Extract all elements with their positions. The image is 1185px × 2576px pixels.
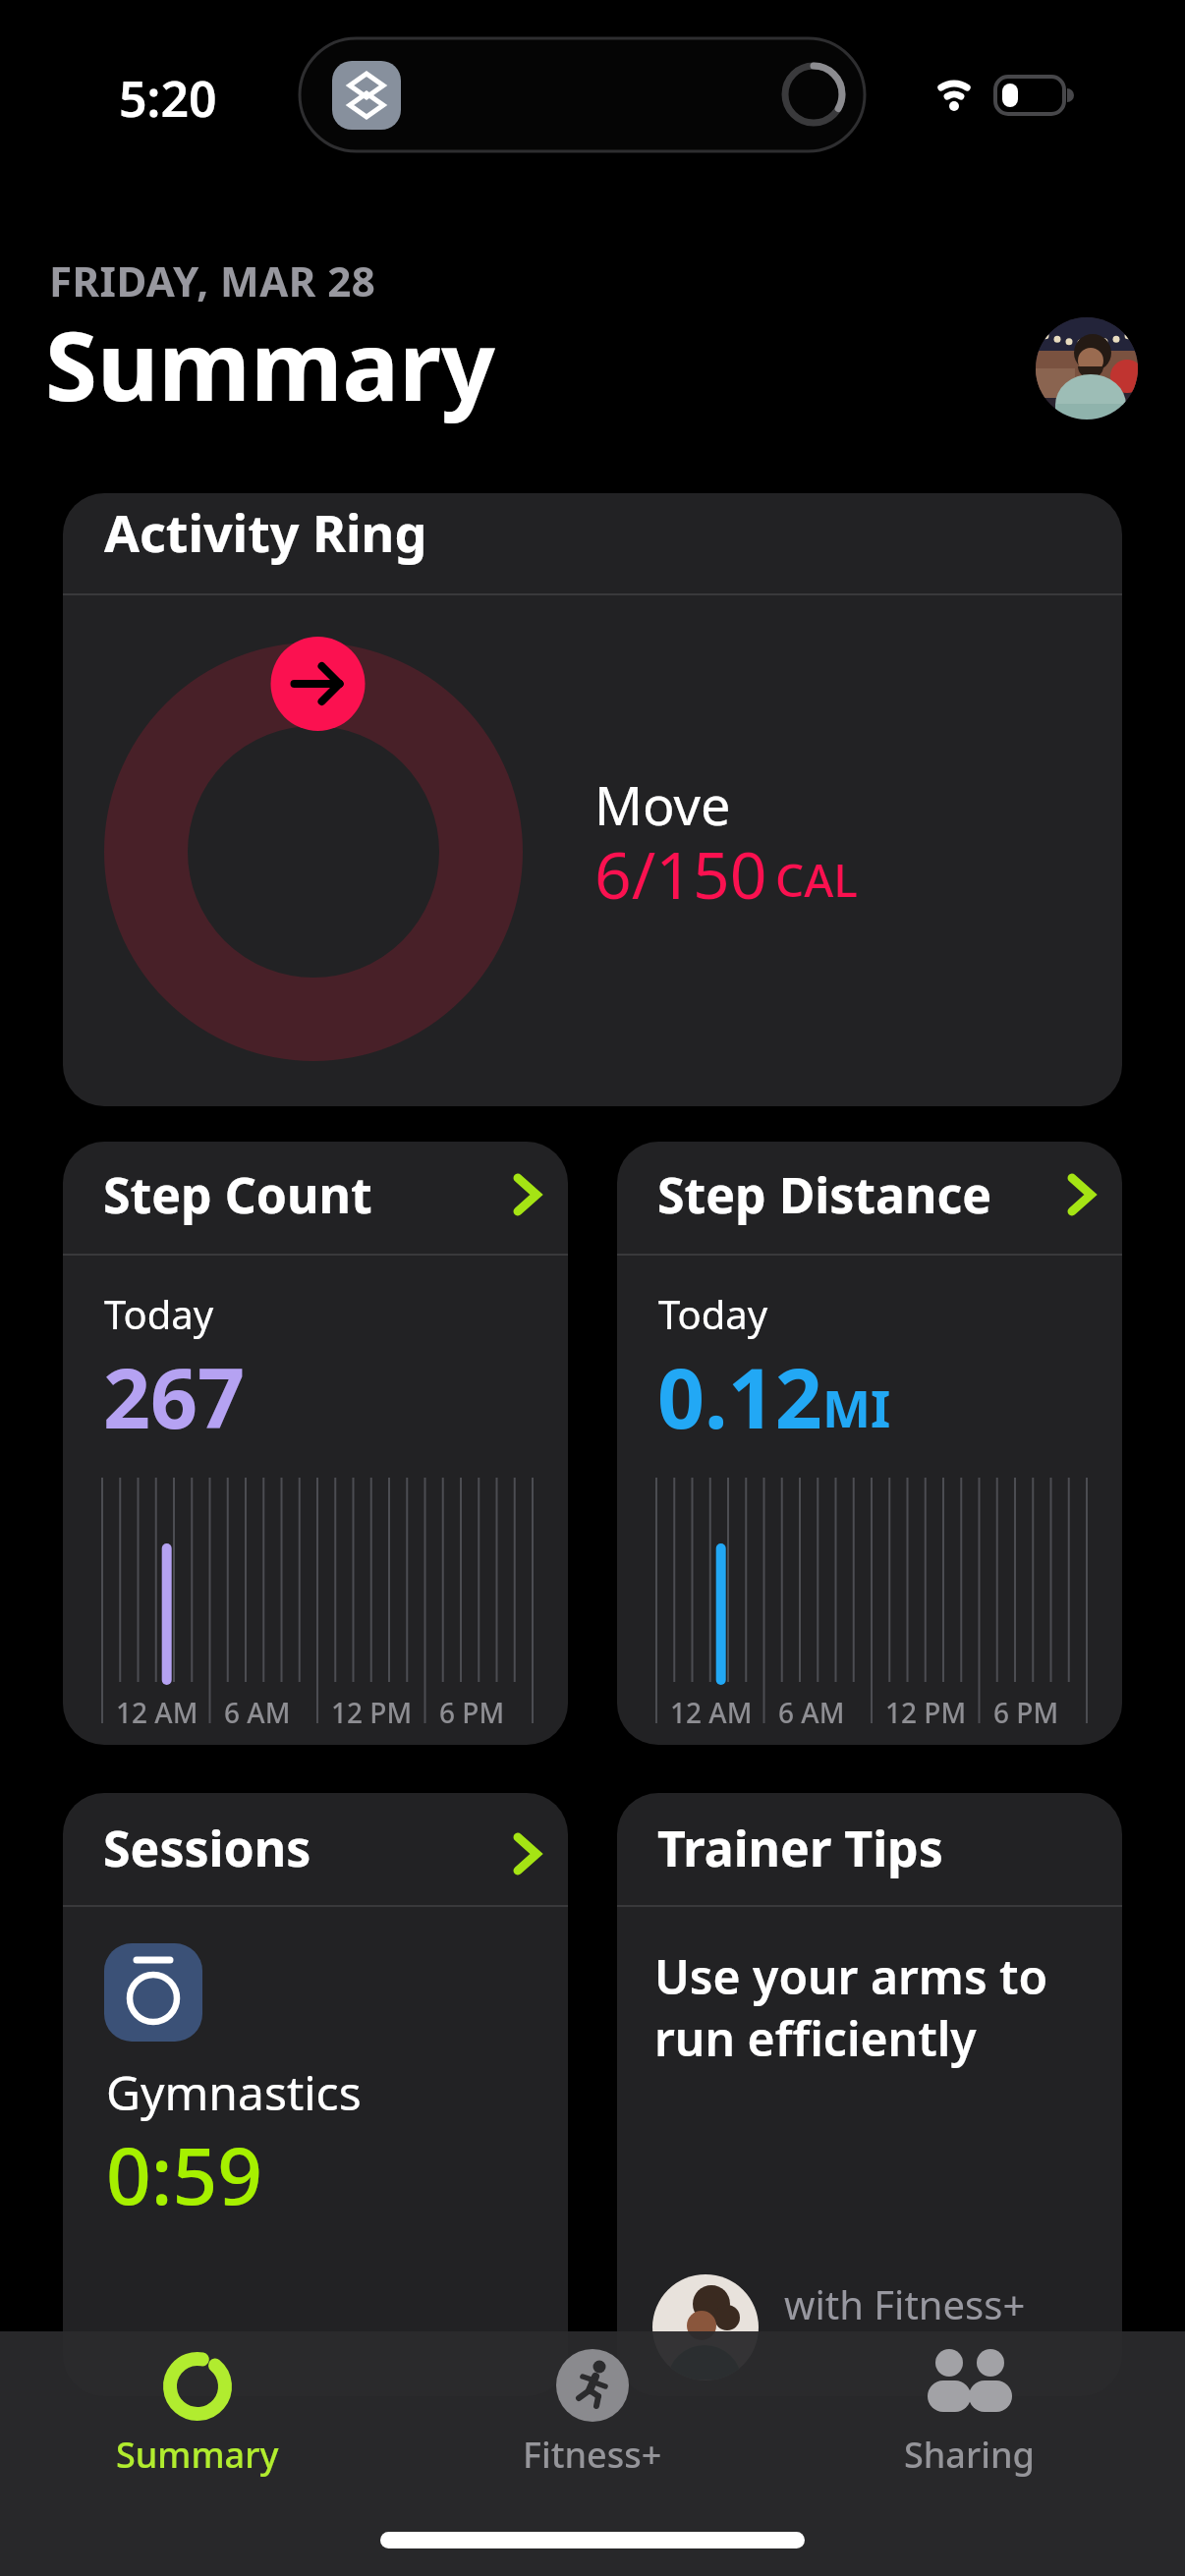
staticText: 267: [103, 1340, 246, 1452]
staticText: 12 AM: [116, 1694, 198, 1731]
staticText: Gymnastics: [106, 2060, 362, 2124]
staticText: Step Distance: [657, 1161, 992, 1228]
staticText: Today: [104, 1287, 214, 1340]
staticText: Summary: [116, 2431, 279, 2479]
staticText: Use your arms to run efficiently: [654, 1944, 1048, 2071]
staticText: 12 AM: [670, 1694, 753, 1731]
staticText: Summary: [45, 300, 495, 428]
staticText: CAL: [775, 849, 858, 911]
staticText: Move: [594, 768, 731, 841]
staticText: 12 PM: [885, 1694, 967, 1731]
staticText: Activity Ring: [104, 497, 427, 567]
button[interactable]: Step Distance: [617, 1142, 1122, 1745]
staticText: 0:59: [106, 2120, 263, 2227]
staticText: MI: [822, 1372, 891, 1442]
staticText: 6 AM: [224, 1694, 291, 1731]
staticText: Fitness+: [523, 2431, 662, 2479]
staticText: 0.12: [657, 1340, 822, 1452]
staticText: 6 PM: [993, 1694, 1059, 1731]
button[interactable]: Sessions: [63, 1793, 568, 2396]
staticText: 6 PM: [439, 1694, 505, 1731]
button[interactable]: Activity Ring: [63, 493, 1122, 1106]
staticText: Step Count: [103, 1161, 372, 1228]
button[interactable]: [1036, 317, 1138, 420]
button[interactable]: Fitness+: [488, 2341, 697, 2479]
staticText: Trainer Tips: [657, 1815, 943, 1881]
staticText: 12 PM: [331, 1694, 413, 1731]
button[interactable]: Step Count: [63, 1142, 568, 1745]
staticText: Sessions: [103, 1815, 311, 1881]
staticText: 6/150: [594, 829, 767, 918]
button[interactable]: Trainer Tips: [617, 1793, 1122, 2396]
staticText: 6 AM: [778, 1694, 845, 1731]
button[interactable]: Sharing: [865, 2341, 1073, 2479]
staticText: FRIDAY, MAR 28: [49, 252, 376, 308]
staticText: Sharing: [904, 2431, 1035, 2479]
button[interactable]: Summary: [93, 2341, 302, 2479]
staticText: 5:20: [119, 65, 217, 132]
staticText: Today: [658, 1287, 768, 1340]
staticText: with Fitness+: [784, 2277, 1026, 2330]
